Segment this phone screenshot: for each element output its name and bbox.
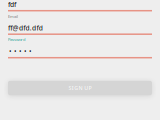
staticText: SIGN UP: [68, 84, 92, 92]
staticText: fdf: [8, 0, 16, 9]
staticText: Email: [8, 14, 18, 19]
staticText: • • • • •: [9, 47, 32, 56]
staticText: Password: [8, 37, 25, 42]
staticText: ff@dfd.dfd: [8, 24, 43, 32]
